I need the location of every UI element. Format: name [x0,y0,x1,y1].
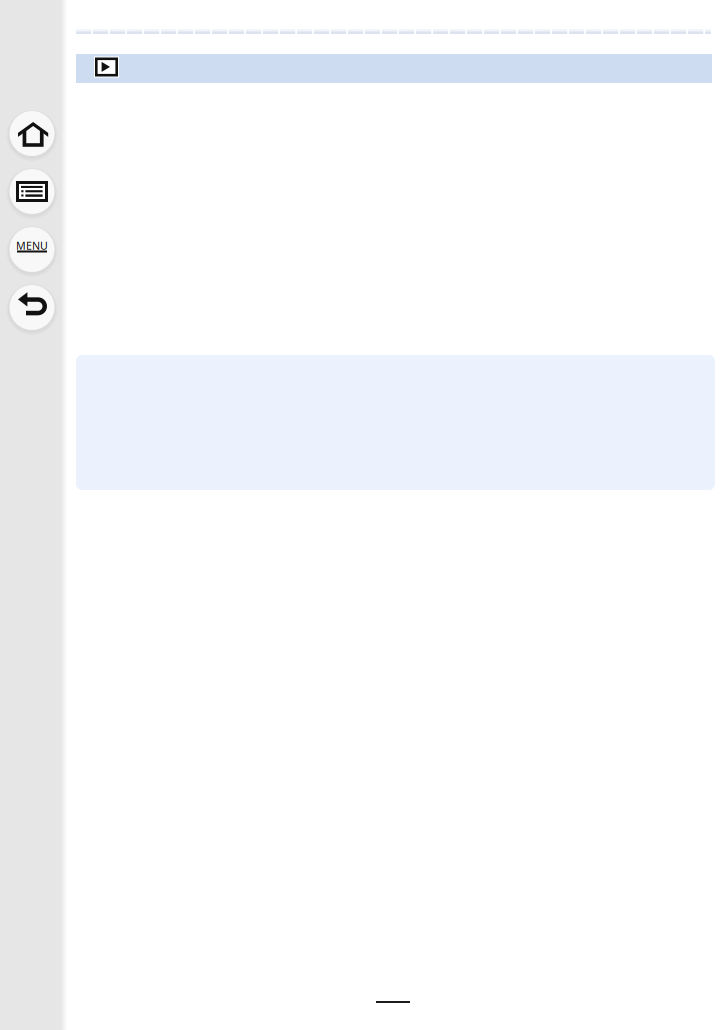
button[interactable]: Home [0,110,61,157]
button[interactable]: Back [0,284,61,331]
button[interactable]: Menu [0,226,61,273]
staticText: MENU [16,238,48,253]
button[interactable]: Contents [0,168,61,215]
